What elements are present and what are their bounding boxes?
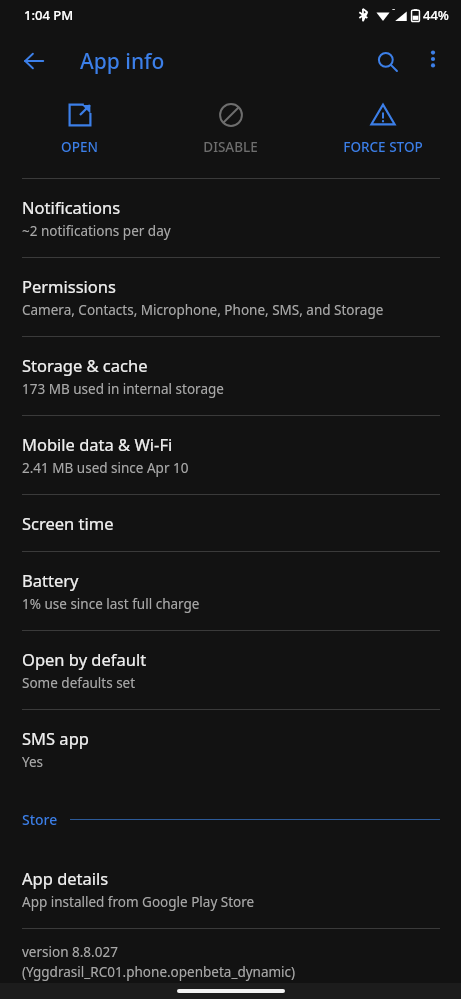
staticText: 1% use since last full charge [22,595,200,613]
staticText: (Yggdrasil_RC01.phone.openbeta_dynamic) [22,963,296,981]
button[interactable]: Search [363,37,411,85]
staticText: ~2 notifications per day [22,222,171,240]
staticText: App info [80,47,165,76]
staticText: OPEN [61,138,98,156]
staticText: Permissions [22,275,116,297]
button[interactable]: App details [0,850,461,928]
button[interactable]: More options [411,37,455,81]
staticText: Notifications [22,196,121,218]
staticText: Yes [22,753,44,771]
button[interactable]: Permissions [0,258,461,336]
staticText: App installed from Google Play Store [22,893,255,911]
staticText: DISABLE [203,138,258,156]
staticText: 44% [423,6,449,24]
staticText: 2.41 MB used since Apr 10 [22,459,189,477]
staticText: Screen time [22,512,114,534]
staticText: SMS app [22,727,89,749]
button[interactable]: SMS app [0,710,461,788]
button[interactable]: Mobile data & Wi-Fi [0,416,461,494]
staticText: Open by default [22,648,147,670]
button[interactable]: Battery [0,552,461,630]
button[interactable]: OPEN [7,92,152,156]
staticText: Storage & cache [22,354,148,376]
staticText: App details [22,867,109,889]
button[interactable]: FORCE STOP [310,92,455,156]
staticText: 1:04 PM [24,6,74,24]
staticText: 173 MB used in internal storage [22,380,224,398]
staticText: Some defaults set [22,674,136,692]
staticText: FORCE STOP [343,138,423,156]
button[interactable]: Notifications [0,179,461,257]
button[interactable]: Open by default [0,631,461,709]
button[interactable]: Back [12,39,56,83]
staticText: Camera, Contacts, Microphone, Phone, SMS… [22,301,384,319]
staticText: Mobile data & Wi-Fi [22,433,173,455]
button[interactable]: Storage & cache [0,337,461,415]
staticText: Battery [22,569,79,591]
button[interactable]: Screen time [0,495,461,551]
button[interactable]: DISABLE [158,92,303,156]
staticText: version 8.8.027 [22,943,118,961]
staticText: Store [22,810,58,829]
